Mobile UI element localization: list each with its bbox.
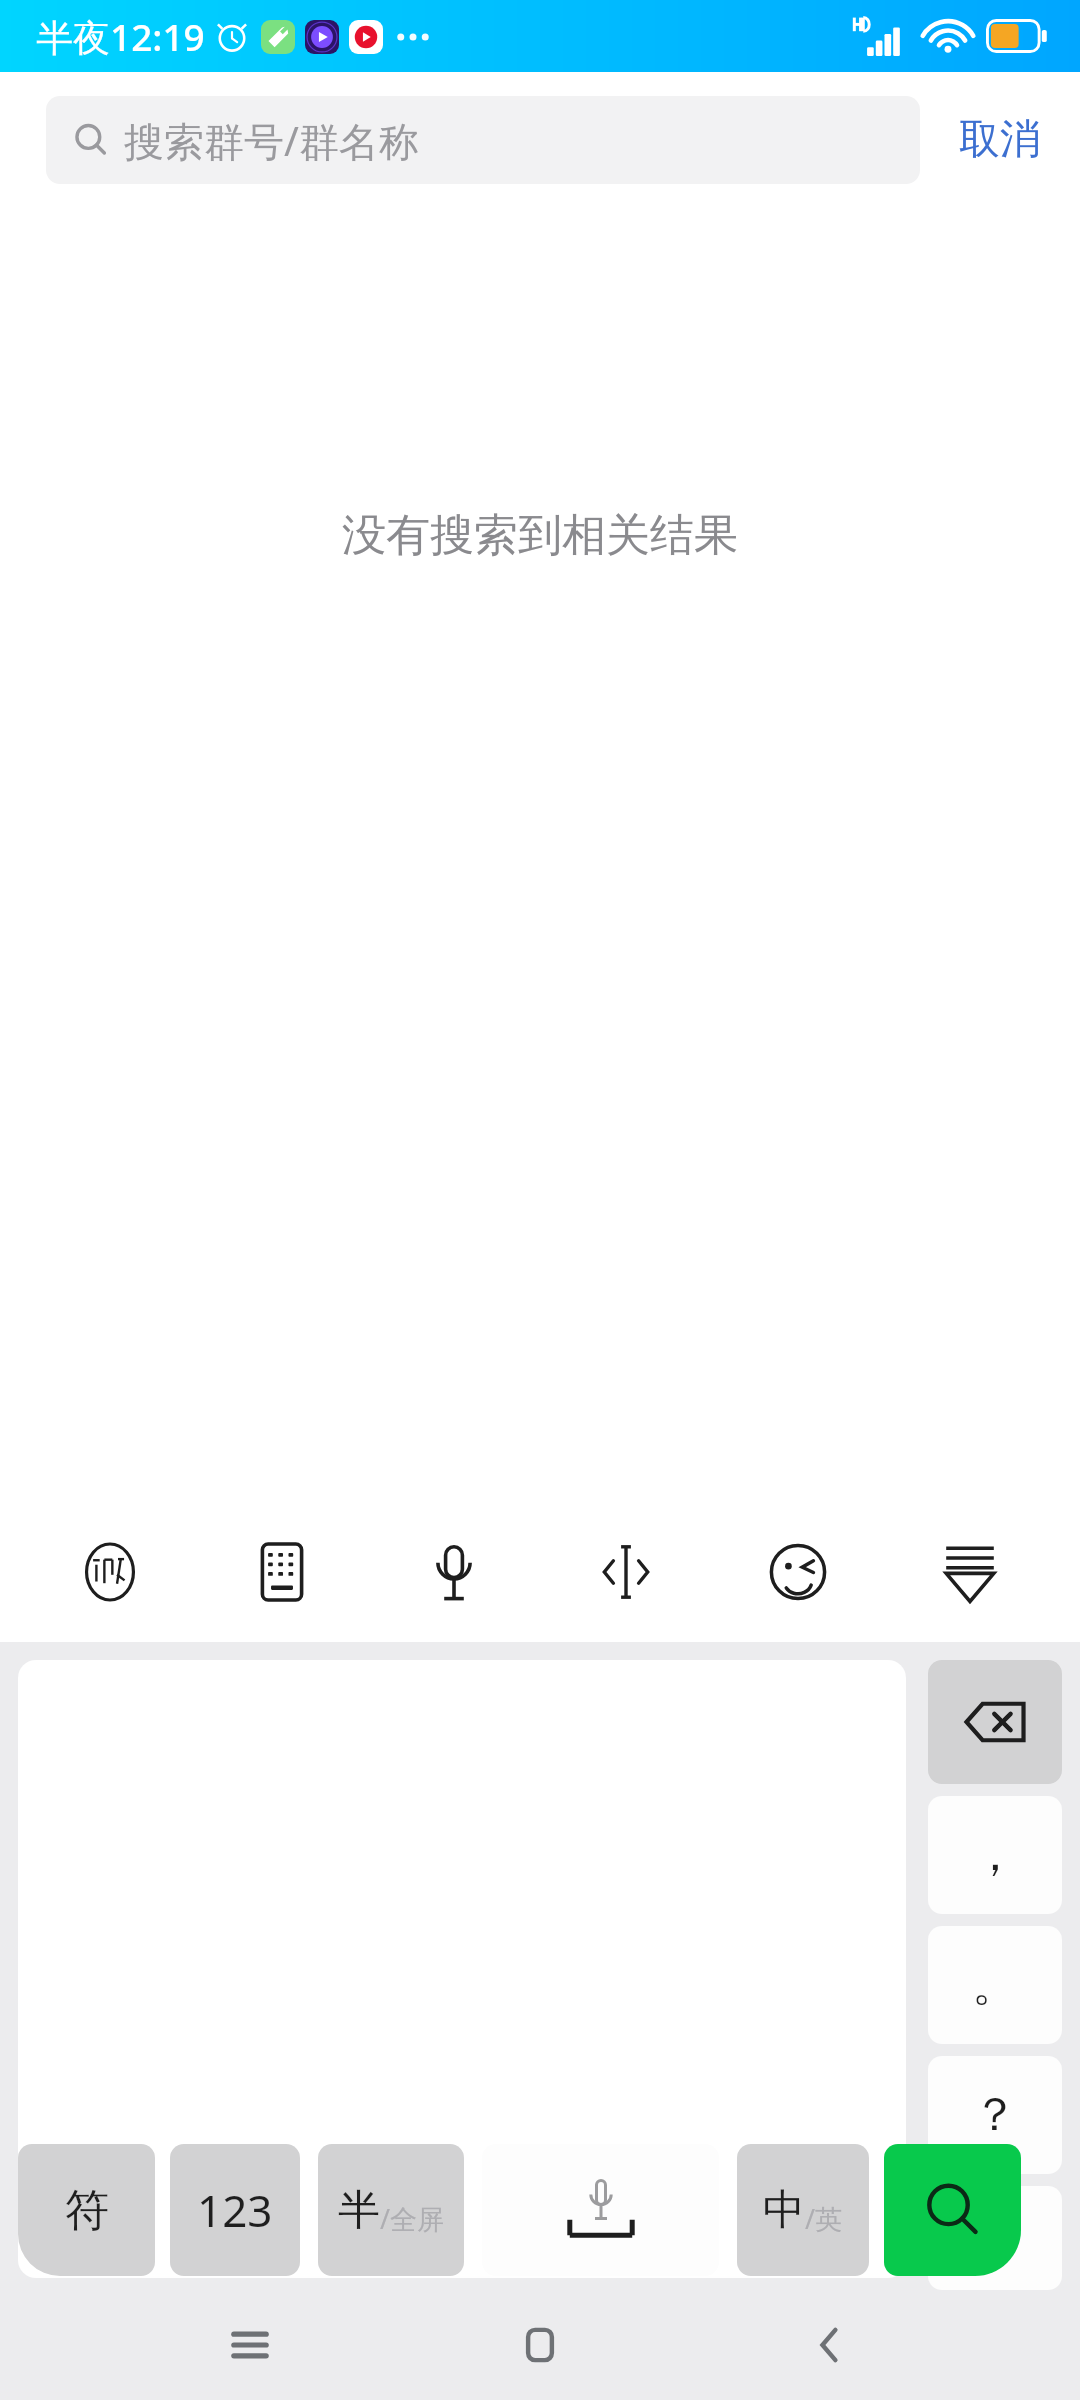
button[interactable]: Hide keyboard	[884, 1502, 1056, 1642]
button[interactable]: 中	[737, 2144, 869, 2276]
button[interactable]: Handwriting area	[18, 1660, 906, 2278]
button[interactable]: 123	[170, 2144, 300, 2276]
button[interactable]: Back	[730, 2290, 930, 2400]
button[interactable]: Search	[884, 2144, 1021, 2276]
staticText: ，	[972, 1826, 1018, 1884]
button[interactable]: 。	[928, 1926, 1062, 2044]
staticText: 没有搜索到相关结果	[342, 508, 738, 563]
staticText: ？	[972, 2086, 1018, 2144]
staticText: 搜索群号/群名称	[124, 113, 419, 168]
staticText: /全屏	[380, 2200, 445, 2237]
staticText: 符	[65, 2183, 109, 2238]
button[interactable]: Voice input	[368, 1502, 540, 1642]
button[interactable]: Emoji	[712, 1502, 884, 1642]
staticText: 取消	[959, 114, 1041, 166]
button[interactable]: Input method	[24, 1502, 196, 1642]
button[interactable]: Move cursor	[540, 1502, 712, 1642]
staticText: /英	[805, 2200, 843, 2237]
button[interactable]: Keyboard layout	[196, 1502, 368, 1642]
staticText: 123	[197, 2180, 273, 2240]
staticText: 半	[338, 2184, 380, 2237]
button[interactable]: ？	[928, 2056, 1062, 2174]
button[interactable]: 符	[18, 2144, 155, 2276]
button[interactable]: ！	[928, 2186, 1062, 2290]
button[interactable]: Recents	[150, 2290, 350, 2400]
staticText: 半夜12:19	[36, 11, 205, 62]
button[interactable]: 搜索群号/群名称	[46, 96, 920, 184]
staticText: 。	[972, 1956, 1018, 2014]
staticText: 中	[763, 2184, 805, 2237]
button[interactable]: 半	[318, 2144, 464, 2276]
button[interactable]: 取消	[920, 90, 1080, 190]
button[interactable]: Home	[440, 2290, 640, 2400]
button[interactable]: ，	[928, 1796, 1062, 1914]
button[interactable]: Backspace	[928, 1660, 1062, 1784]
button[interactable]	[482, 2144, 719, 2276]
staticText: ！	[972, 2209, 1018, 2267]
